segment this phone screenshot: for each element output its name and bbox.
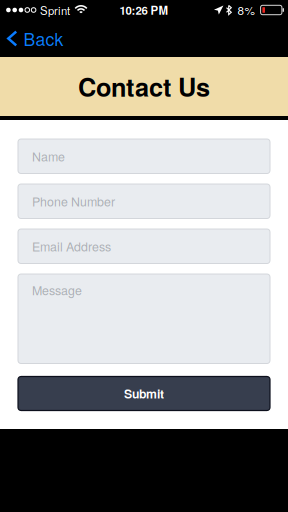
staticText: Message xyxy=(32,281,82,299)
staticText: Back xyxy=(23,26,63,51)
staticText: Email Address xyxy=(32,237,111,255)
staticText: Submit xyxy=(124,385,164,402)
button[interactable]: Back xyxy=(0,20,71,57)
staticText: Sprint xyxy=(40,2,70,18)
staticText: Phone Number xyxy=(32,192,115,210)
staticText: 8% xyxy=(238,2,255,18)
button[interactable]: Submit xyxy=(18,376,270,410)
staticText: Contact Us xyxy=(78,68,210,105)
staticText: 10:26 PM xyxy=(119,2,168,18)
staticText: Name xyxy=(32,147,65,165)
